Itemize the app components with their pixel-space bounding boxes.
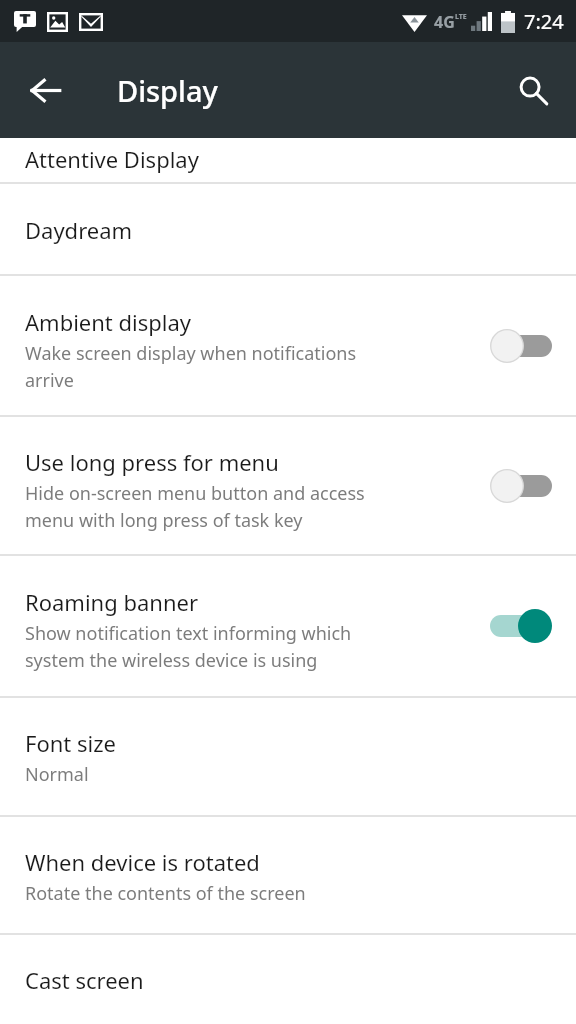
button[interactable]: Roaming banner switch xyxy=(484,597,558,655)
staticText: Roaming banner xyxy=(25,587,198,617)
button[interactable]: When device is rotated xyxy=(0,817,576,933)
button[interactable]: Back xyxy=(14,59,76,121)
staticText: Daydream xyxy=(25,215,133,245)
button[interactable]: Ambient display switch xyxy=(484,317,558,375)
button[interactable]: Search xyxy=(502,59,564,121)
button[interactable]: Ambient display xyxy=(0,276,576,415)
button[interactable]: Roaming banner xyxy=(0,556,576,696)
button[interactable]: Cast screen xyxy=(0,935,576,1023)
staticText: When device is rotated xyxy=(25,847,260,877)
staticText: Show notification text informing which s… xyxy=(25,621,352,672)
staticText: Attentive Display xyxy=(25,144,199,174)
button[interactable]: Use long press for menu switch xyxy=(484,457,558,515)
staticText: Font size xyxy=(25,728,116,758)
staticText: Hide on-screen menu button and access me… xyxy=(25,481,365,532)
staticText: Rotate the contents of the screen xyxy=(25,881,306,906)
staticText: Display xyxy=(117,71,218,110)
staticText: 7:24 xyxy=(524,8,564,35)
staticText: Cast screen xyxy=(25,965,144,995)
button[interactable]: Daydream xyxy=(0,184,576,274)
staticText: Ambient display xyxy=(25,307,192,337)
staticText: Normal xyxy=(25,762,89,787)
button[interactable]: Font size xyxy=(0,698,576,815)
button[interactable]: Attentive Display xyxy=(0,138,576,182)
staticText: LTE xyxy=(455,12,467,22)
staticText: 4G xyxy=(434,11,455,33)
staticText: Wake screen display when notifications a… xyxy=(25,341,357,392)
button[interactable]: Use long press for menu xyxy=(0,417,576,554)
staticText: Use long press for menu xyxy=(25,447,279,477)
